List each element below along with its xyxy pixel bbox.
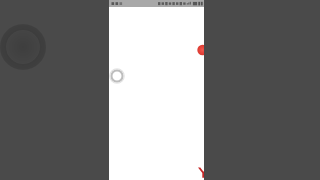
button[interactable]: Notification <box>196 43 210 57</box>
button[interactable]: Record <box>108 67 126 85</box>
button[interactable]: Brand mark <box>197 166 211 180</box>
